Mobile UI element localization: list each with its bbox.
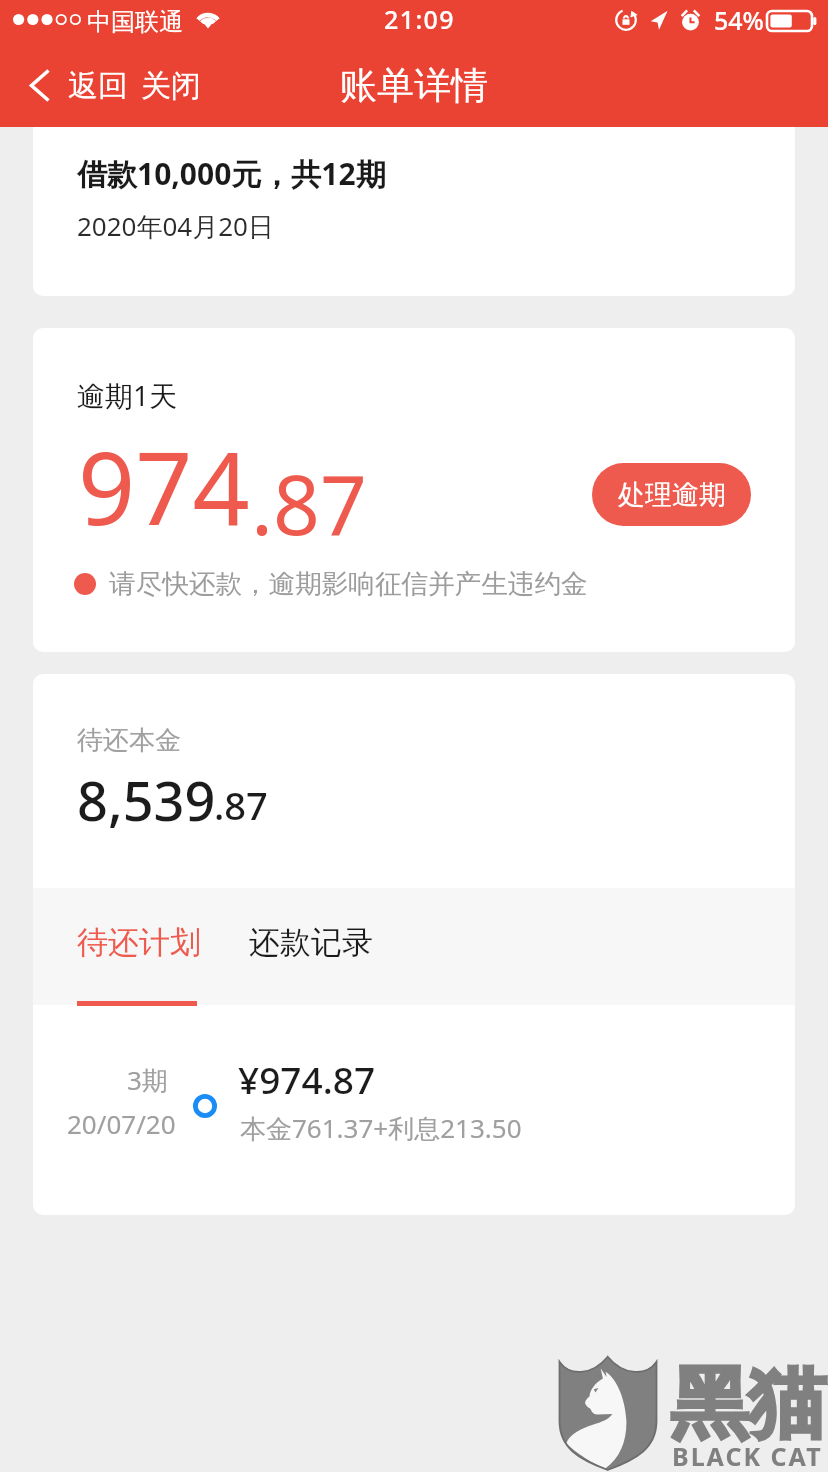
staticText: 20/07/20 [67,1106,176,1141]
staticText: BLACK CAT [672,1439,823,1472]
staticText: ¥974.87 [238,1054,376,1104]
staticText: 3期 [127,1062,168,1098]
staticText: 本金761.37+利息213.50 [240,1110,522,1146]
button[interactable]: 关闭 [134,44,208,127]
staticText: 返回 [68,67,128,105]
button[interactable]: 返回 [0,44,134,127]
staticText: .87 [214,779,268,831]
staticText: 处理逾期 [618,478,726,512]
staticText: 待还计划 [77,923,201,962]
staticText: .87 [251,447,367,559]
button[interactable]: 待还计划 [33,888,227,1020]
staticText: 账单详情 [340,62,488,109]
other: 返回 [30,69,50,102]
staticText: 21:09 [384,2,456,36]
button[interactable]: 还款记录 [227,888,409,1020]
staticText: 待还本金 [77,724,181,757]
button[interactable]: 处理逾期 [592,463,751,526]
staticText: 请尽快还款，逾期影响征信并产生违约金 [109,567,588,601]
button[interactable]: 3期 [33,1006,795,1156]
staticText: 借款10,000元，共12期 [77,153,386,194]
staticText: 黑猫 [670,1355,826,1453]
staticText: 8,539 [77,763,216,837]
staticText: 974 [78,418,250,554]
staticText: 2020年04月20日 [77,208,274,244]
staticText: 中国联通 [87,7,183,37]
staticText: 还款记录 [249,923,373,962]
staticText: 54% [714,3,764,37]
staticText: 关闭 [141,67,201,105]
staticText: 逾期1天 [77,376,178,414]
